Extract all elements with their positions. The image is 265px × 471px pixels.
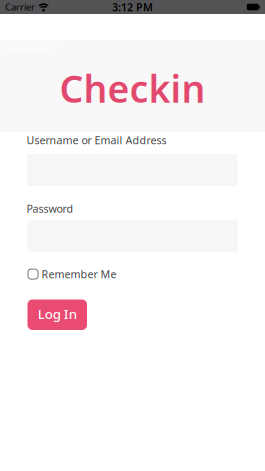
staticText: 3:12 PM — [112, 0, 153, 14]
staticText: Username or Email Address — [26, 133, 166, 147]
staticText: Log In — [38, 305, 77, 323]
staticText: Password — [26, 201, 73, 216]
staticText: Checkin — [59, 63, 205, 113]
button[interactable]: Log In — [27, 299, 87, 330]
staticText: Carrier — [5, 1, 35, 13]
staticText: Remember Me — [41, 267, 116, 281]
button[interactable]: Remember Me — [27, 267, 116, 281]
